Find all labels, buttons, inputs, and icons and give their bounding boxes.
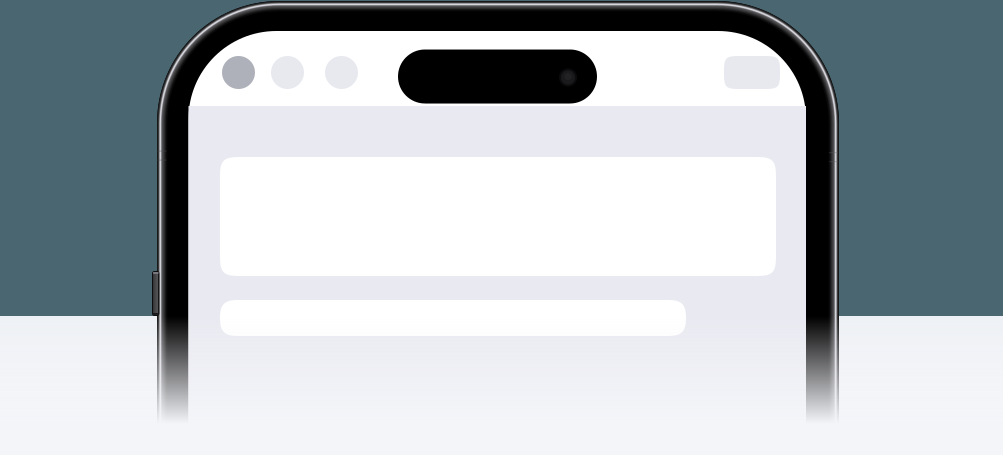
button[interactable]: More [0,0,1003,455]
button[interactable]: Second profile [0,0,1003,455]
button[interactable]: Account [0,0,1003,455]
button[interactable]: Third profile [0,0,1003,455]
